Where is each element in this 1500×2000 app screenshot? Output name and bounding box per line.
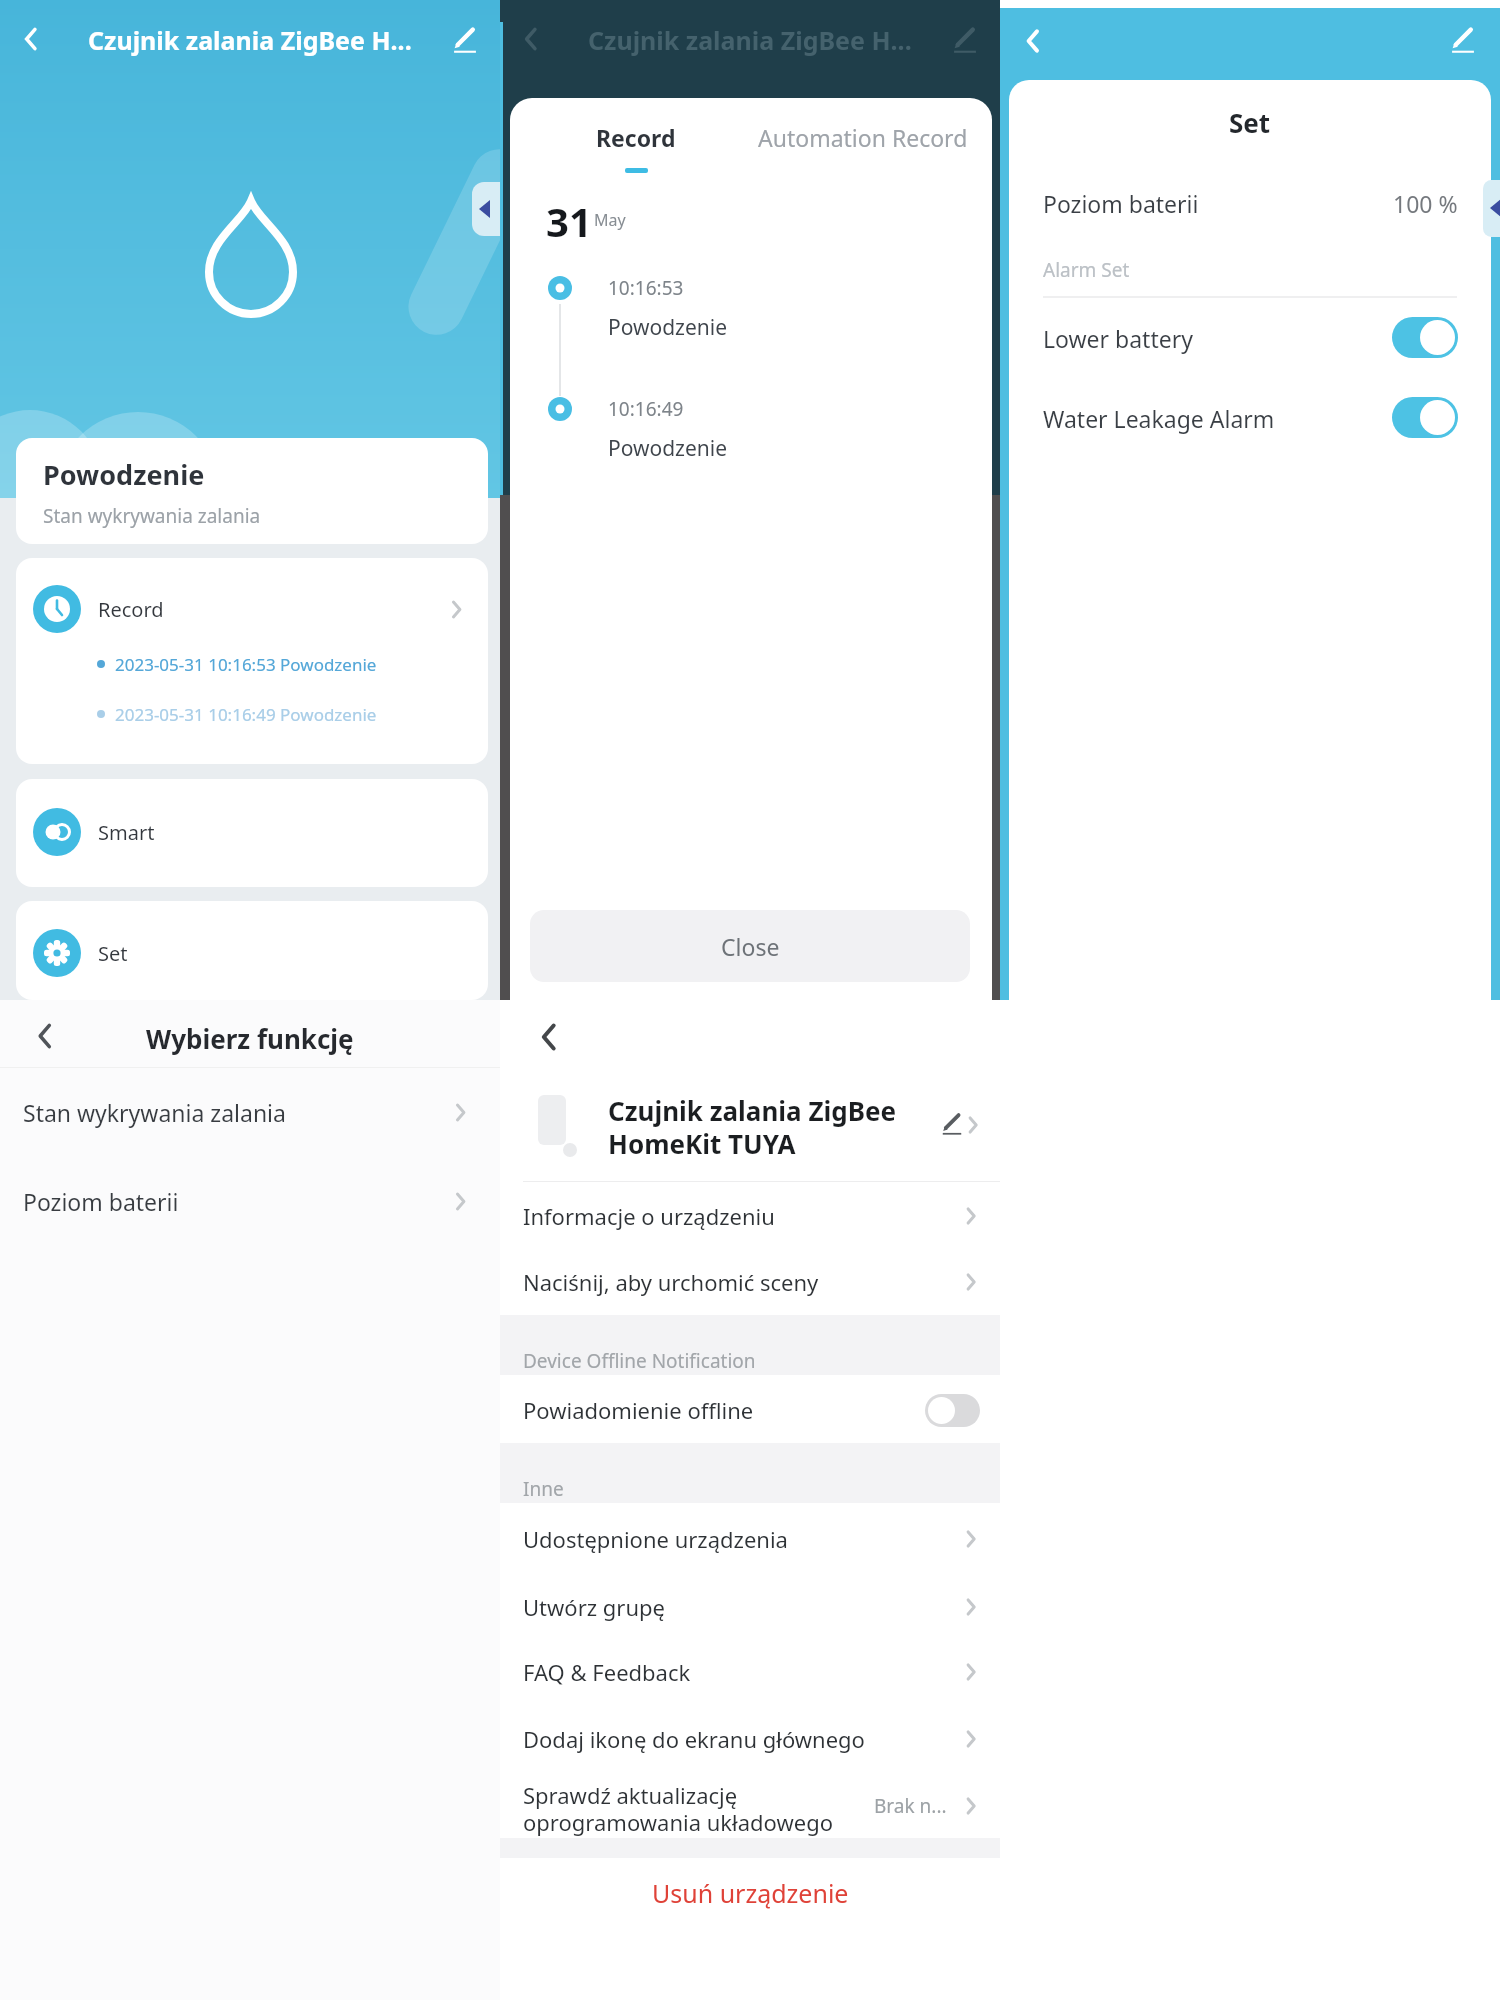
button[interactable] bbox=[472, 182, 500, 236]
staticText: Automation Record bbox=[758, 122, 968, 153]
staticText: Wybierz funkcję bbox=[146, 1021, 354, 1056]
staticText: Powodzenie bbox=[608, 434, 728, 463]
button[interactable]: Record bbox=[546, 119, 726, 155]
staticText: Czujnik zalania ZigBee bbox=[608, 1093, 897, 1128]
staticText: Inne bbox=[523, 1476, 564, 1502]
button[interactable] bbox=[16, 438, 488, 544]
staticText: Stan wykrywania zalania bbox=[23, 1097, 286, 1128]
button[interactable]: Close bbox=[530, 910, 970, 982]
button[interactable] bbox=[952, 26, 978, 52]
staticText: Czujnik zalania ZigBee H... bbox=[88, 23, 412, 57]
button[interactable] bbox=[452, 26, 478, 52]
staticText: Powiadomienie offline bbox=[523, 1395, 754, 1425]
button[interactable]: Dodaj ikonę do ekranu głównego bbox=[523, 1721, 923, 1757]
staticText: Device Offline Notification bbox=[523, 1348, 756, 1374]
button[interactable] bbox=[1392, 317, 1458, 358]
staticText: 10:16:53 bbox=[608, 275, 684, 301]
staticText: 2023-05-31 10:16:53 Powodzenie bbox=[115, 653, 377, 676]
staticText: 100 % bbox=[1393, 188, 1458, 219]
button[interactable]: Automation Record bbox=[743, 119, 983, 155]
staticText: 10:16:49 bbox=[608, 396, 684, 422]
staticText: Water Leakage Alarm bbox=[1043, 403, 1275, 434]
staticText: Poziom baterii bbox=[23, 1186, 179, 1217]
staticText: Czujnik zalania ZigBee H... bbox=[588, 23, 912, 57]
staticText: Set bbox=[98, 940, 128, 967]
button[interactable] bbox=[16, 779, 488, 887]
staticText: Udostępnione urządzenia bbox=[523, 1524, 788, 1554]
staticText: Usuń urządzenie bbox=[652, 1876, 849, 1910]
button[interactable] bbox=[16, 558, 488, 764]
staticText: Record bbox=[98, 596, 164, 623]
button[interactable]: Stan wykrywania zalania bbox=[23, 1094, 423, 1130]
staticText: Poziom baterii bbox=[1043, 188, 1199, 219]
staticText: Close bbox=[721, 931, 780, 962]
staticText: Informacje o urządzeniu bbox=[523, 1201, 775, 1231]
button[interactable] bbox=[925, 1394, 980, 1427]
button[interactable] bbox=[1483, 180, 1500, 237]
button[interactable]: Naciśnij, aby urchomić sceny bbox=[523, 1264, 923, 1300]
button[interactable]: Poziom baterii bbox=[1043, 185, 1323, 221]
staticText: Smart bbox=[98, 819, 155, 846]
staticText: FAQ & Feedback bbox=[523, 1657, 691, 1687]
staticText: 2023-05-31 10:16:49 Powodzenie bbox=[115, 703, 377, 726]
button[interactable] bbox=[16, 901, 488, 1000]
staticText: Dodaj ikonę do ekranu głównego bbox=[523, 1724, 865, 1754]
staticText: HomeKit TUYA bbox=[608, 1126, 796, 1161]
button[interactable]: Udostępnione urządzenia bbox=[523, 1521, 923, 1557]
staticText: Alarm Set bbox=[1043, 257, 1130, 283]
button[interactable] bbox=[941, 1112, 963, 1134]
staticText: Stan wykrywania zalania bbox=[43, 503, 261, 529]
staticText: May bbox=[594, 209, 626, 231]
button[interactable]: Usuń urządzenie bbox=[500, 1875, 1000, 1911]
button[interactable]: Poziom baterii bbox=[23, 1183, 423, 1219]
staticText: Utwórz grupę bbox=[523, 1592, 665, 1622]
button[interactable]: Utwórz grupę bbox=[523, 1589, 923, 1625]
staticText: Powodzenie bbox=[43, 456, 205, 493]
button[interactable]: FAQ & Feedback bbox=[523, 1654, 923, 1690]
staticText: Record bbox=[596, 122, 676, 153]
staticText: Set bbox=[1229, 105, 1271, 140]
staticText: Lower battery bbox=[1043, 323, 1193, 354]
button[interactable] bbox=[1392, 397, 1458, 438]
button[interactable]: Informacje o urządzeniu bbox=[523, 1198, 923, 1234]
button[interactable]: Czujnik zalania ZigBee bbox=[608, 1092, 948, 1128]
staticText: Sprawdź aktualizację bbox=[523, 1780, 738, 1810]
staticText: 31 bbox=[546, 194, 592, 244]
button[interactable] bbox=[1450, 26, 1476, 52]
staticText: Brak n... bbox=[874, 1793, 947, 1819]
staticText: oprogramowania układowego bbox=[523, 1807, 834, 1837]
button[interactable]: Czujnik zalania ZigBee H... bbox=[0, 20, 500, 60]
staticText: Naciśnij, aby urchomić sceny bbox=[523, 1267, 819, 1297]
button[interactable]: Sprawdź aktualizację bbox=[523, 1777, 923, 1813]
staticText: Powodzenie bbox=[608, 313, 728, 342]
